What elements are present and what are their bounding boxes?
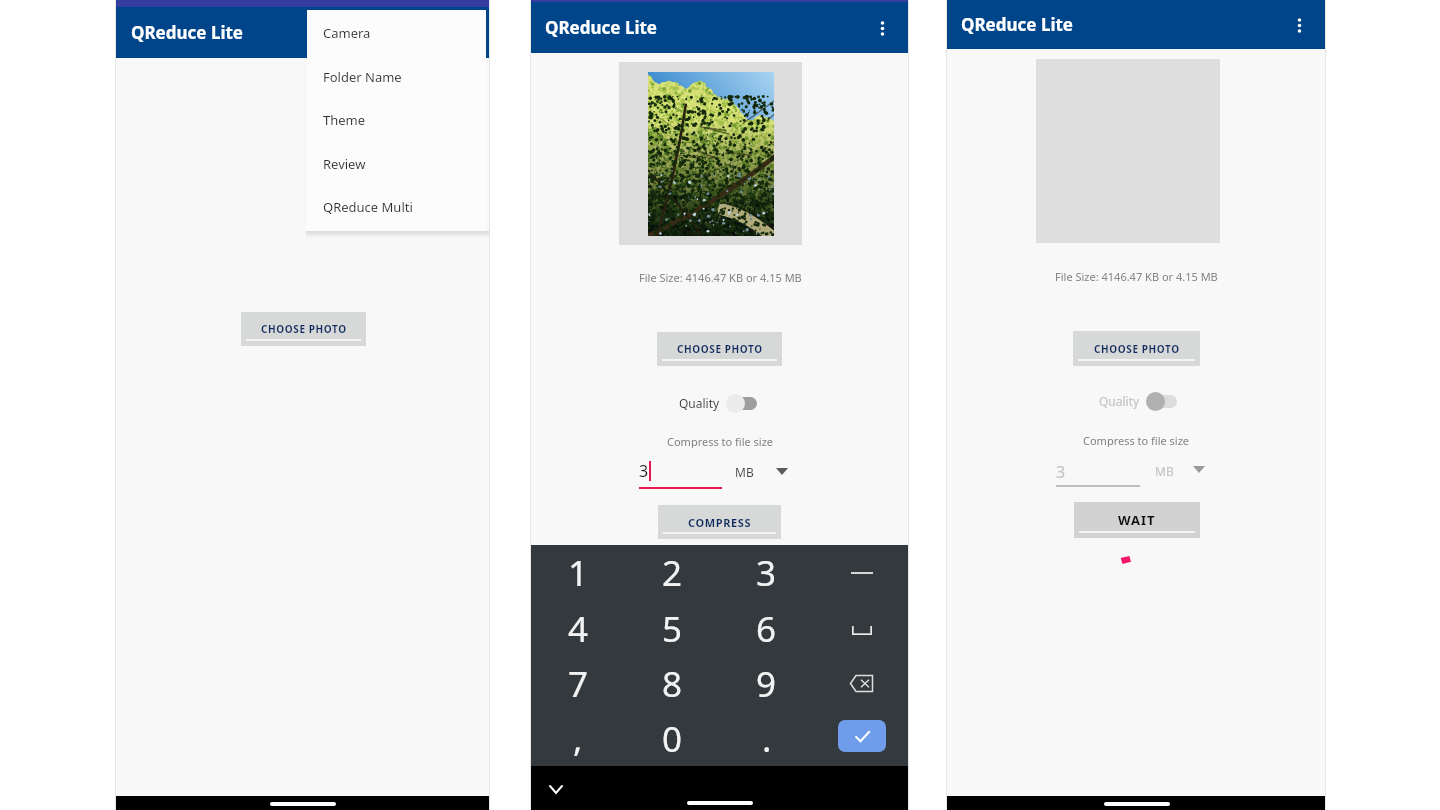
- staticText: 3: [1056, 461, 1066, 481]
- other: Delete: [849, 674, 874, 693]
- staticText: QReduce Lite: [961, 13, 1073, 36]
- other: space: [852, 623, 872, 635]
- staticText: ,: [573, 715, 583, 763]
- button[interactable]: 6: [719, 601, 814, 656]
- button[interactable]: COMPRESS: [658, 505, 781, 539]
- button[interactable]: Hide keyboard: [541, 774, 571, 804]
- button[interactable]: CHOOSE PHOTO: [1073, 331, 1200, 366]
- button[interactable]: Choose size unit: [776, 468, 788, 475]
- staticText: 8: [662, 660, 683, 708]
- staticText: Quality: [679, 395, 720, 411]
- staticText: 7: [568, 660, 589, 708]
- button[interactable]: Enter: [814, 711, 909, 766]
- button[interactable]: Review: [307, 142, 486, 186]
- staticText: CHOOSE PHOTO: [677, 342, 763, 356]
- staticText: Theme: [323, 111, 366, 129]
- staticText: 3: [756, 549, 777, 597]
- button[interactable]: 1: [531, 545, 625, 601]
- staticText: Compress to file size: [667, 434, 774, 448]
- button[interactable]: 2: [625, 545, 719, 601]
- other: minus: [851, 566, 873, 580]
- button[interactable]: QReduce Multi: [307, 185, 486, 229]
- staticText: .: [762, 715, 772, 763]
- staticText: File Size: 4146.47 KB or 4.15 MB: [639, 270, 802, 284]
- button[interactable]: space: [814, 601, 909, 656]
- button[interactable]: More options: [1282, 8, 1316, 42]
- staticText: Camera: [323, 24, 371, 42]
- staticText: Quality: [1099, 393, 1140, 409]
- staticText: QReduce Lite: [131, 21, 243, 44]
- button[interactable]: CHOOSE PHOTO: [241, 312, 366, 346]
- button[interactable]: Theme: [307, 98, 486, 142]
- button[interactable]: Delete: [814, 656, 909, 711]
- staticText: COMPRESS: [688, 515, 752, 530]
- button[interactable]: Enter: [838, 720, 886, 752]
- button[interactable]: 9: [719, 656, 814, 711]
- button[interactable]: CHOOSE PHOTO: [657, 332, 782, 366]
- staticText: 6: [756, 605, 777, 653]
- button[interactable]: Quality toggle: [726, 394, 757, 413]
- button[interactable]: 3: [719, 545, 814, 601]
- button[interactable]: 7: [531, 656, 625, 711]
- button[interactable]: More options: [865, 11, 899, 45]
- button[interactable]: WAIT: [1074, 502, 1200, 538]
- button[interactable]: Camera: [307, 11, 486, 55]
- staticText: CHOOSE PHOTO: [1094, 342, 1180, 356]
- button[interactable]: .: [719, 711, 814, 766]
- staticText: MB: [1155, 463, 1174, 479]
- button[interactable]: 0: [625, 711, 719, 766]
- staticText: CHOOSE PHOTO: [261, 322, 347, 336]
- staticText: 9: [756, 660, 777, 708]
- button[interactable]: ,: [531, 711, 625, 766]
- staticText: Compress to file size: [1083, 433, 1190, 447]
- staticText: MB: [735, 464, 754, 480]
- staticText: WAIT: [1118, 511, 1156, 529]
- staticText: 0: [662, 715, 683, 763]
- button[interactable]: 4: [531, 601, 625, 656]
- button[interactable]: minus: [814, 545, 909, 601]
- button[interactable]: Quality toggle: [1146, 392, 1177, 411]
- button[interactable]: Choose size unit: [1193, 466, 1205, 473]
- staticText: 5: [662, 605, 683, 653]
- button[interactable]: 5: [625, 601, 719, 656]
- staticText: QReduce Multi: [323, 198, 413, 216]
- staticText: Folder Name: [323, 68, 402, 86]
- button[interactable]: 8: [625, 656, 719, 711]
- staticText: File Size: 4146.47 KB or 4.15 MB: [1055, 269, 1218, 283]
- staticText: 1: [568, 549, 589, 597]
- staticText: Review: [323, 155, 366, 173]
- button[interactable]: Folder Name: [307, 55, 486, 99]
- staticText: 4: [568, 605, 589, 653]
- staticText: 2: [662, 549, 683, 597]
- staticText: QReduce Lite: [545, 16, 657, 39]
- staticText: 3: [639, 460, 649, 482]
